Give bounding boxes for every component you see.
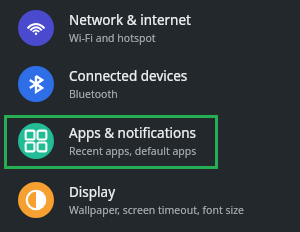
staticText: Display (69, 183, 116, 201)
staticText: Connected devices (69, 67, 188, 85)
other: Bluetooth (25, 73, 47, 95)
other: Apps (25, 130, 47, 152)
button[interactable]: Wi-Fi (0, 0, 300, 56)
staticText: Bluetooth (69, 87, 118, 101)
staticText: Wallpaper, screen timeout, font size (69, 203, 245, 217)
staticText: Wi-Fi and hotspot (69, 31, 156, 45)
staticText: Apps & notifications (69, 124, 196, 142)
staticText: Recent apps, default apps (69, 144, 197, 158)
other: Display brightness (25, 189, 47, 211)
other: Wi-Fi (25, 17, 47, 39)
button[interactable]: Apps (0, 112, 300, 170)
button[interactable]: Bluetooth (0, 56, 300, 112)
staticText: Network & internet (69, 11, 191, 29)
button[interactable]: Display brightness (0, 170, 300, 226)
